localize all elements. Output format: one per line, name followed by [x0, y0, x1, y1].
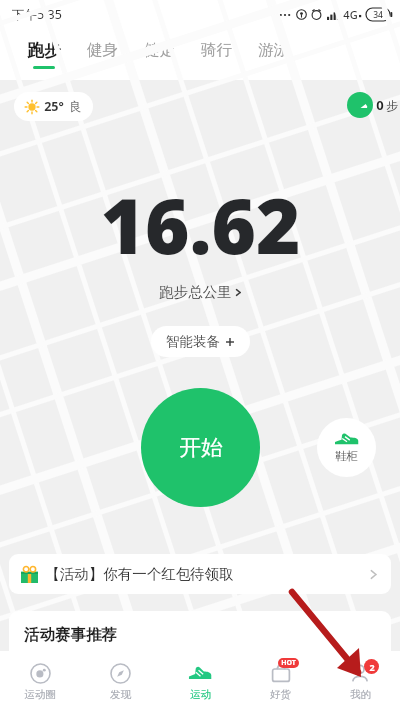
button[interactable]: 运动	[160, 651, 240, 711]
button[interactable]: 开始	[141, 388, 260, 507]
staticText: 健走	[144, 40, 175, 60]
button[interactable]: 25°	[14, 92, 93, 121]
staticText: 4G	[343, 7, 358, 22]
staticText: 跑步	[27, 40, 61, 61]
staticText: 发现	[110, 688, 131, 701]
staticText: 活动赛事推荐	[24, 625, 117, 645]
button[interactable]: 鞋柜	[317, 418, 376, 477]
button[interactable]: 【活动】你有一个红包待领取	[9, 554, 391, 594]
staticText: 【活动】你有一个红包待领取	[45, 565, 234, 583]
staticText: HOT	[281, 658, 296, 668]
staticText: 我的	[350, 688, 371, 701]
staticText: 34	[373, 9, 383, 21]
button[interactable]: 2	[320, 651, 400, 711]
button[interactable]: 发现	[80, 651, 160, 711]
button[interactable]: 游泳	[245, 40, 302, 68]
staticText: 运动圈	[24, 688, 56, 701]
staticText: 游泳	[258, 40, 289, 60]
button[interactable]: 健走	[131, 40, 188, 68]
staticText: 0	[376, 96, 384, 114]
staticText: 好货	[270, 688, 291, 701]
staticText: 下午5:35	[12, 6, 62, 23]
staticText: 良	[69, 99, 82, 115]
staticText: 鞋柜	[335, 449, 358, 463]
button[interactable]: HOT	[240, 651, 320, 711]
staticText: 跑步总公里	[159, 283, 232, 301]
button[interactable]: 健身	[74, 40, 131, 68]
staticText: 运动	[190, 688, 211, 701]
staticText: 健身	[87, 40, 118, 60]
staticText: 16.62	[100, 173, 301, 277]
staticText: 开始	[179, 434, 223, 462]
button[interactable]: 运动圈	[0, 651, 80, 711]
button[interactable]: 智能装备	[151, 326, 250, 357]
staticText: 智能装备	[166, 333, 220, 350]
button[interactable]: 跑步	[14, 40, 74, 69]
button[interactable]: 跑步总公里	[159, 283, 243, 301]
button[interactable]: 骑行	[188, 40, 245, 68]
staticText: 骑行	[201, 40, 232, 60]
staticText: 步	[386, 98, 398, 113]
staticText: 25°	[44, 98, 64, 115]
staticText: 2	[369, 661, 375, 673]
button[interactable]: 0	[347, 92, 400, 118]
